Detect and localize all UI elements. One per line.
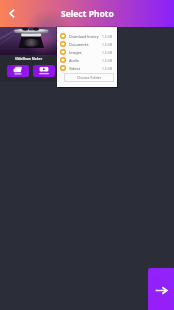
staticText: 1.5 GB [102, 58, 113, 62]
button[interactable]: SlideShow Maker ad [0, 27, 57, 82]
staticText: Images [69, 50, 102, 55]
staticText: Documents [69, 42, 102, 47]
button[interactable]: Download history [57, 32, 117, 40]
button[interactable]: Images [57, 48, 117, 56]
button[interactable]: Documents [57, 40, 117, 48]
staticText: 1.5 GB [102, 34, 113, 38]
button[interactable] [33, 65, 55, 77]
button[interactable] [7, 65, 29, 77]
staticText: Download history [69, 34, 102, 39]
staticText: Videos [69, 66, 102, 71]
button[interactable]: Audio [57, 56, 117, 64]
staticText: 1.5 GB [102, 50, 113, 54]
button[interactable]: Next [148, 268, 174, 310]
staticText: Choose Folder [77, 75, 102, 80]
staticText: SlideShow Maker [0, 57, 57, 61]
staticText: Select Photo [61, 8, 114, 20]
staticText: 1.5 GB [102, 66, 113, 70]
staticText: 1.5 GB [102, 42, 113, 46]
button[interactable]: Choose Folder [64, 73, 114, 82]
button[interactable]: Back [0, 0, 26, 26]
button[interactable]: Videos [57, 64, 117, 72]
staticText: Audio [69, 58, 102, 63]
